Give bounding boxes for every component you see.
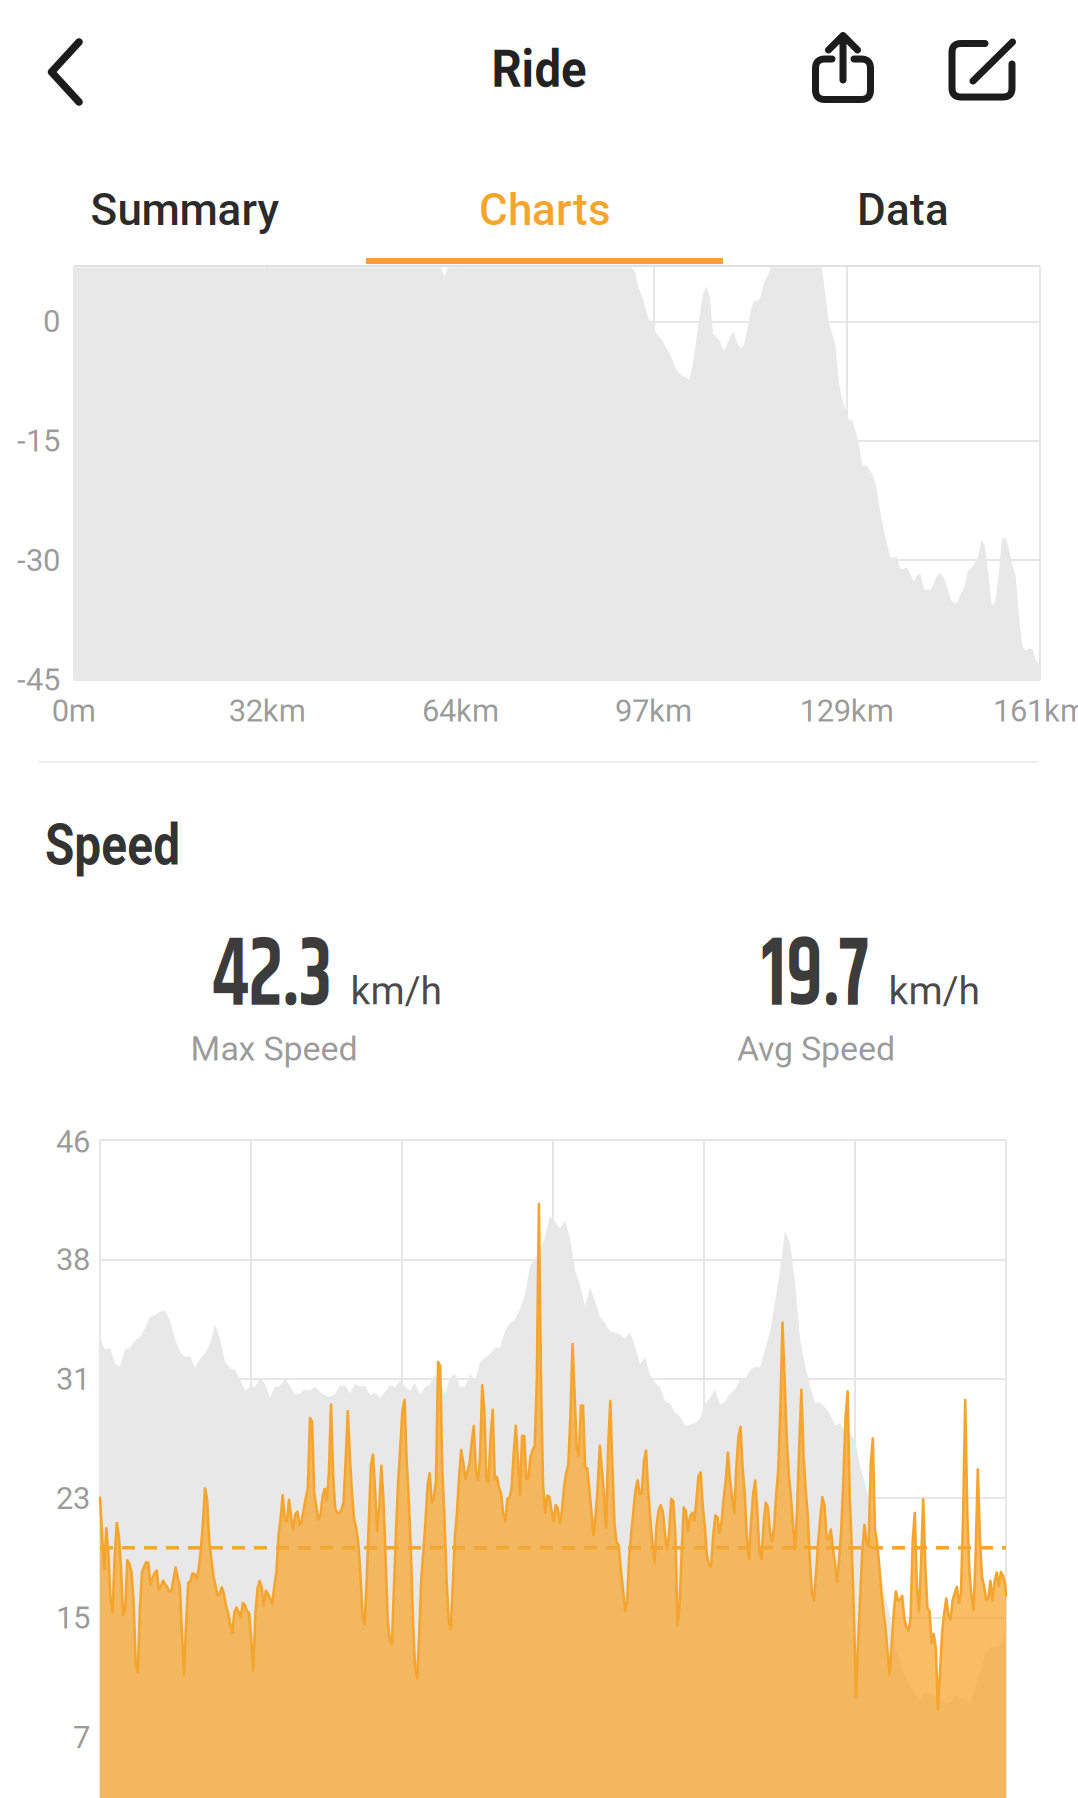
staticText: 7 (73, 1719, 90, 1755)
staticText: km/h (888, 968, 979, 1014)
staticText: Speed (32, 812, 193, 878)
staticText: km/h (350, 968, 441, 1014)
staticText: -15 (17, 423, 60, 459)
staticText: 38 (56, 1241, 90, 1278)
staticText: 97km (615, 693, 692, 729)
button[interactable]: Data (728, 160, 1078, 260)
staticText: 129km (800, 693, 894, 729)
button[interactable]: Summary (10, 160, 360, 260)
button[interactable] (28, 28, 102, 116)
staticText: 46 (56, 1124, 90, 1160)
staticText: 23 (56, 1480, 90, 1517)
staticText: 161km (993, 693, 1078, 729)
staticText: 0 (43, 303, 60, 340)
staticText: 31 (56, 1361, 90, 1397)
button[interactable] (795, 22, 891, 118)
staticText: 42.3 (200, 903, 344, 1051)
staticText: 15 (56, 1600, 90, 1636)
staticText: Summary (90, 184, 279, 236)
staticText: -45 (17, 662, 60, 698)
staticText: Charts (479, 184, 611, 236)
staticText: Avg Speed (737, 1029, 895, 1069)
staticText: 32km (229, 693, 306, 729)
button[interactable] (933, 21, 1031, 119)
button[interactable]: Charts (370, 160, 720, 260)
staticText: 0m (52, 693, 96, 729)
staticText: Ride (487, 39, 591, 99)
staticText: 64km (422, 693, 499, 729)
staticText: Max Speed (190, 1029, 357, 1069)
staticText: 19.7 (750, 903, 879, 1051)
staticText: -30 (17, 542, 60, 579)
staticText: Data (857, 184, 949, 236)
